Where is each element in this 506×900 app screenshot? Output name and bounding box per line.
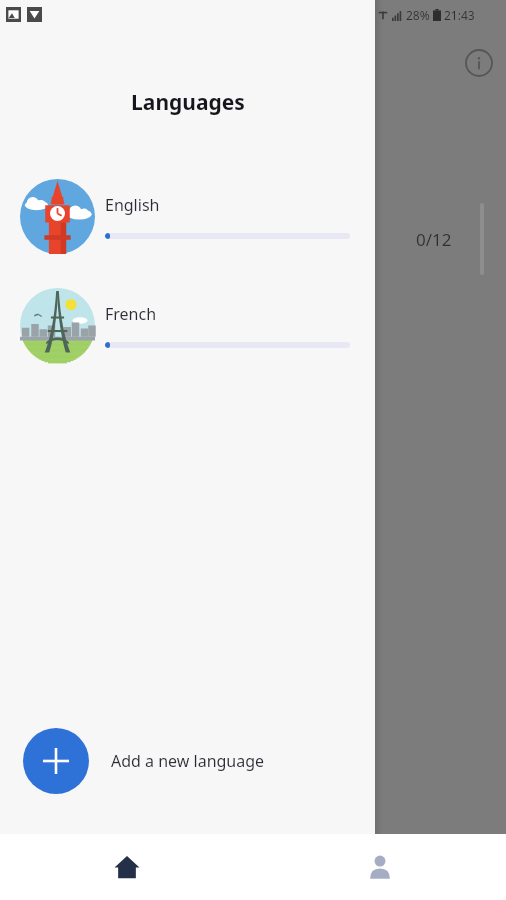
button[interactable]: English <box>20 179 350 254</box>
button[interactable]: Add a new language <box>23 728 482 794</box>
button[interactable]: Profile <box>253 834 506 900</box>
button[interactable]: 28% <box>375 0 506 834</box>
button[interactable]: French <box>20 288 350 363</box>
staticText: Add a new language <box>111 750 265 772</box>
staticText: 28% <box>406 7 430 23</box>
staticText: 21:43 <box>444 7 475 23</box>
button[interactable]: Info <box>464 48 494 78</box>
staticText: English <box>105 194 160 216</box>
staticText: French <box>105 303 157 325</box>
button[interactable]: Home <box>0 834 253 900</box>
staticText: 0/12 <box>416 228 452 251</box>
staticText: Languages <box>0 88 376 117</box>
